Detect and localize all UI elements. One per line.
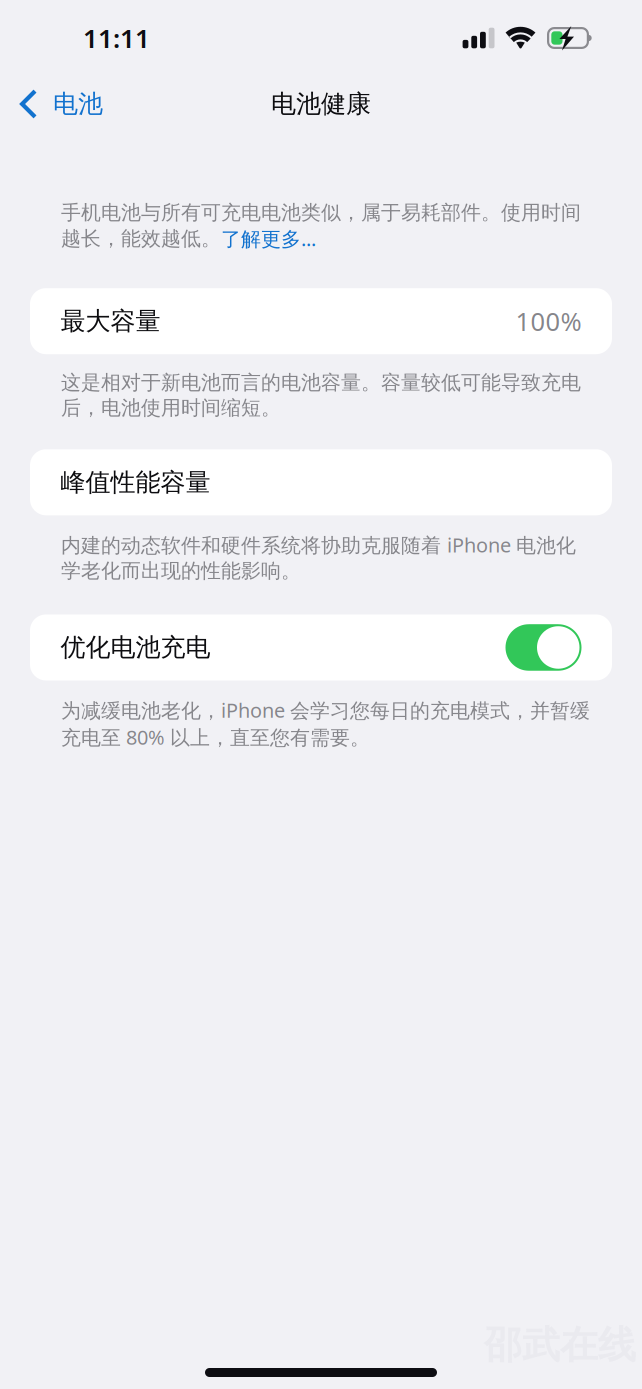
staticText: 内建的动态软件和硬件系统将协助克服随着 iPhone 电池化 学老化而出现的性能…	[61, 531, 576, 583]
button[interactable]: 电池	[0, 82, 200, 126]
staticText: 手机电池与所有可充电电池类似，属于易耗部件。使用时间	[61, 200, 581, 225]
staticText: 最大容量	[60, 305, 160, 337]
staticText: 为减缓电池老化，iPhone 会学习您每日的充电模式，并暂缓 充电至 80% 以…	[61, 696, 590, 751]
staticText: 电池	[53, 88, 103, 120]
button[interactable]: 优化电池充电	[0, 614, 642, 680]
staticText: 邵武在线	[484, 1321, 636, 1369]
staticText: 峰值性能容量	[60, 467, 210, 498]
staticText: 这是相对于新电池而言的电池容量。容量较低可能导致充电 后，电池使用时间缩短。	[61, 370, 581, 420]
button[interactable]: 最大容量	[0, 288, 642, 354]
staticText: 越长，能效越低。	[61, 226, 221, 251]
staticText: 了解更多...	[221, 225, 316, 252]
button[interactable]: 了解更多...	[221, 225, 316, 252]
staticText: 电池健康	[271, 88, 371, 120]
staticText: 11:11	[83, 20, 150, 56]
staticText: 优化电池充电	[60, 632, 210, 663]
staticText: 100%	[515, 304, 581, 338]
button[interactable]: 峰值性能容量	[0, 449, 642, 515]
